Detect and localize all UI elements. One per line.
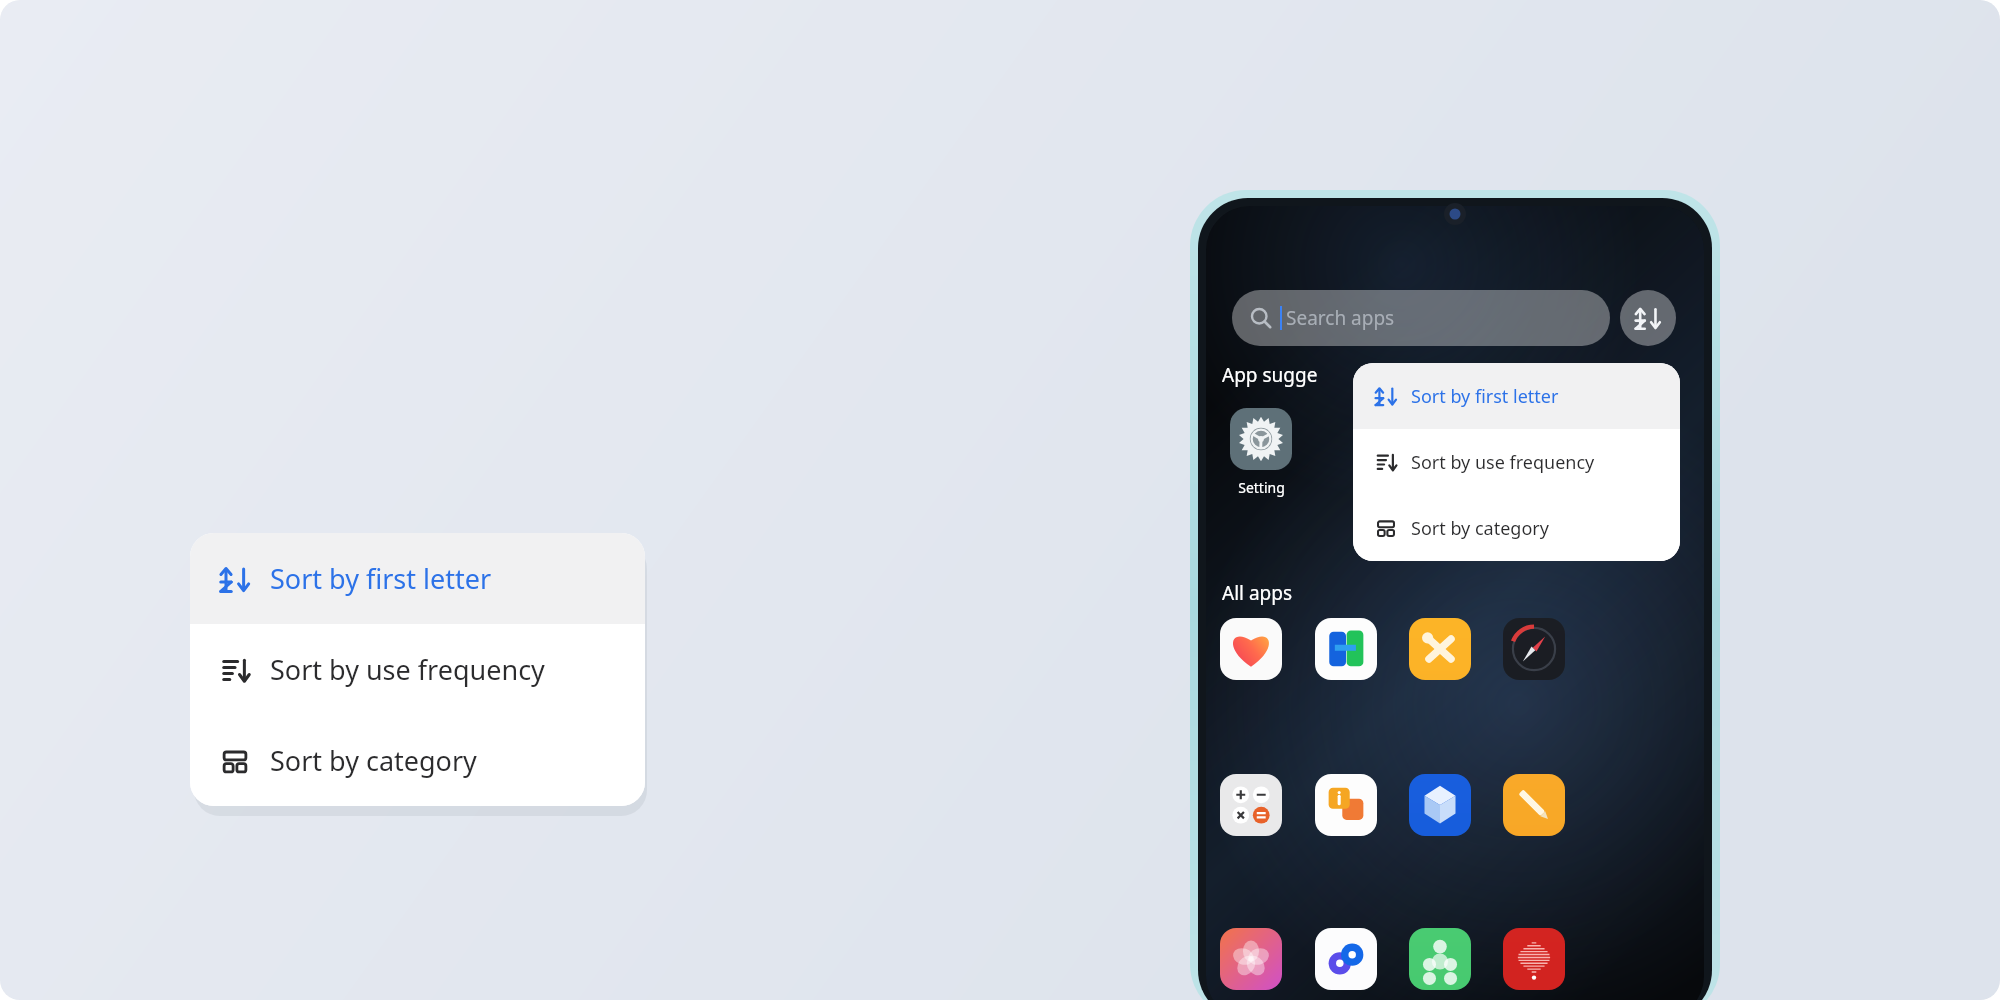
staticText: Sort by category xyxy=(270,742,477,779)
staticText: Search apps xyxy=(1286,305,1395,331)
staticText: App sugge xyxy=(1222,362,1318,388)
staticText: Setting xyxy=(1238,478,1285,497)
button[interactable]: Sort by category xyxy=(1353,495,1680,561)
staticText: All apps xyxy=(1222,580,1293,606)
button[interactable]: Sort by use frequency xyxy=(190,624,645,715)
button[interactable]: Sort by use frequency xyxy=(1353,429,1680,495)
staticText: Sort by first letter xyxy=(1411,384,1559,409)
button[interactable]: Sort apps xyxy=(1620,290,1676,346)
button[interactable]: Sort by first letter xyxy=(190,533,645,624)
staticText: Sort by use frequency xyxy=(270,651,545,688)
staticText: Sort by first letter xyxy=(270,560,492,597)
button[interactable]: Sort by first letter xyxy=(1353,363,1680,429)
staticText: Sort by category xyxy=(1411,516,1549,541)
staticText: Sort by use frequency xyxy=(1411,450,1595,475)
button[interactable]: Setting xyxy=(1222,408,1300,497)
button[interactable]: Sort by category xyxy=(190,715,645,806)
button[interactable]: Search apps xyxy=(1232,290,1610,346)
